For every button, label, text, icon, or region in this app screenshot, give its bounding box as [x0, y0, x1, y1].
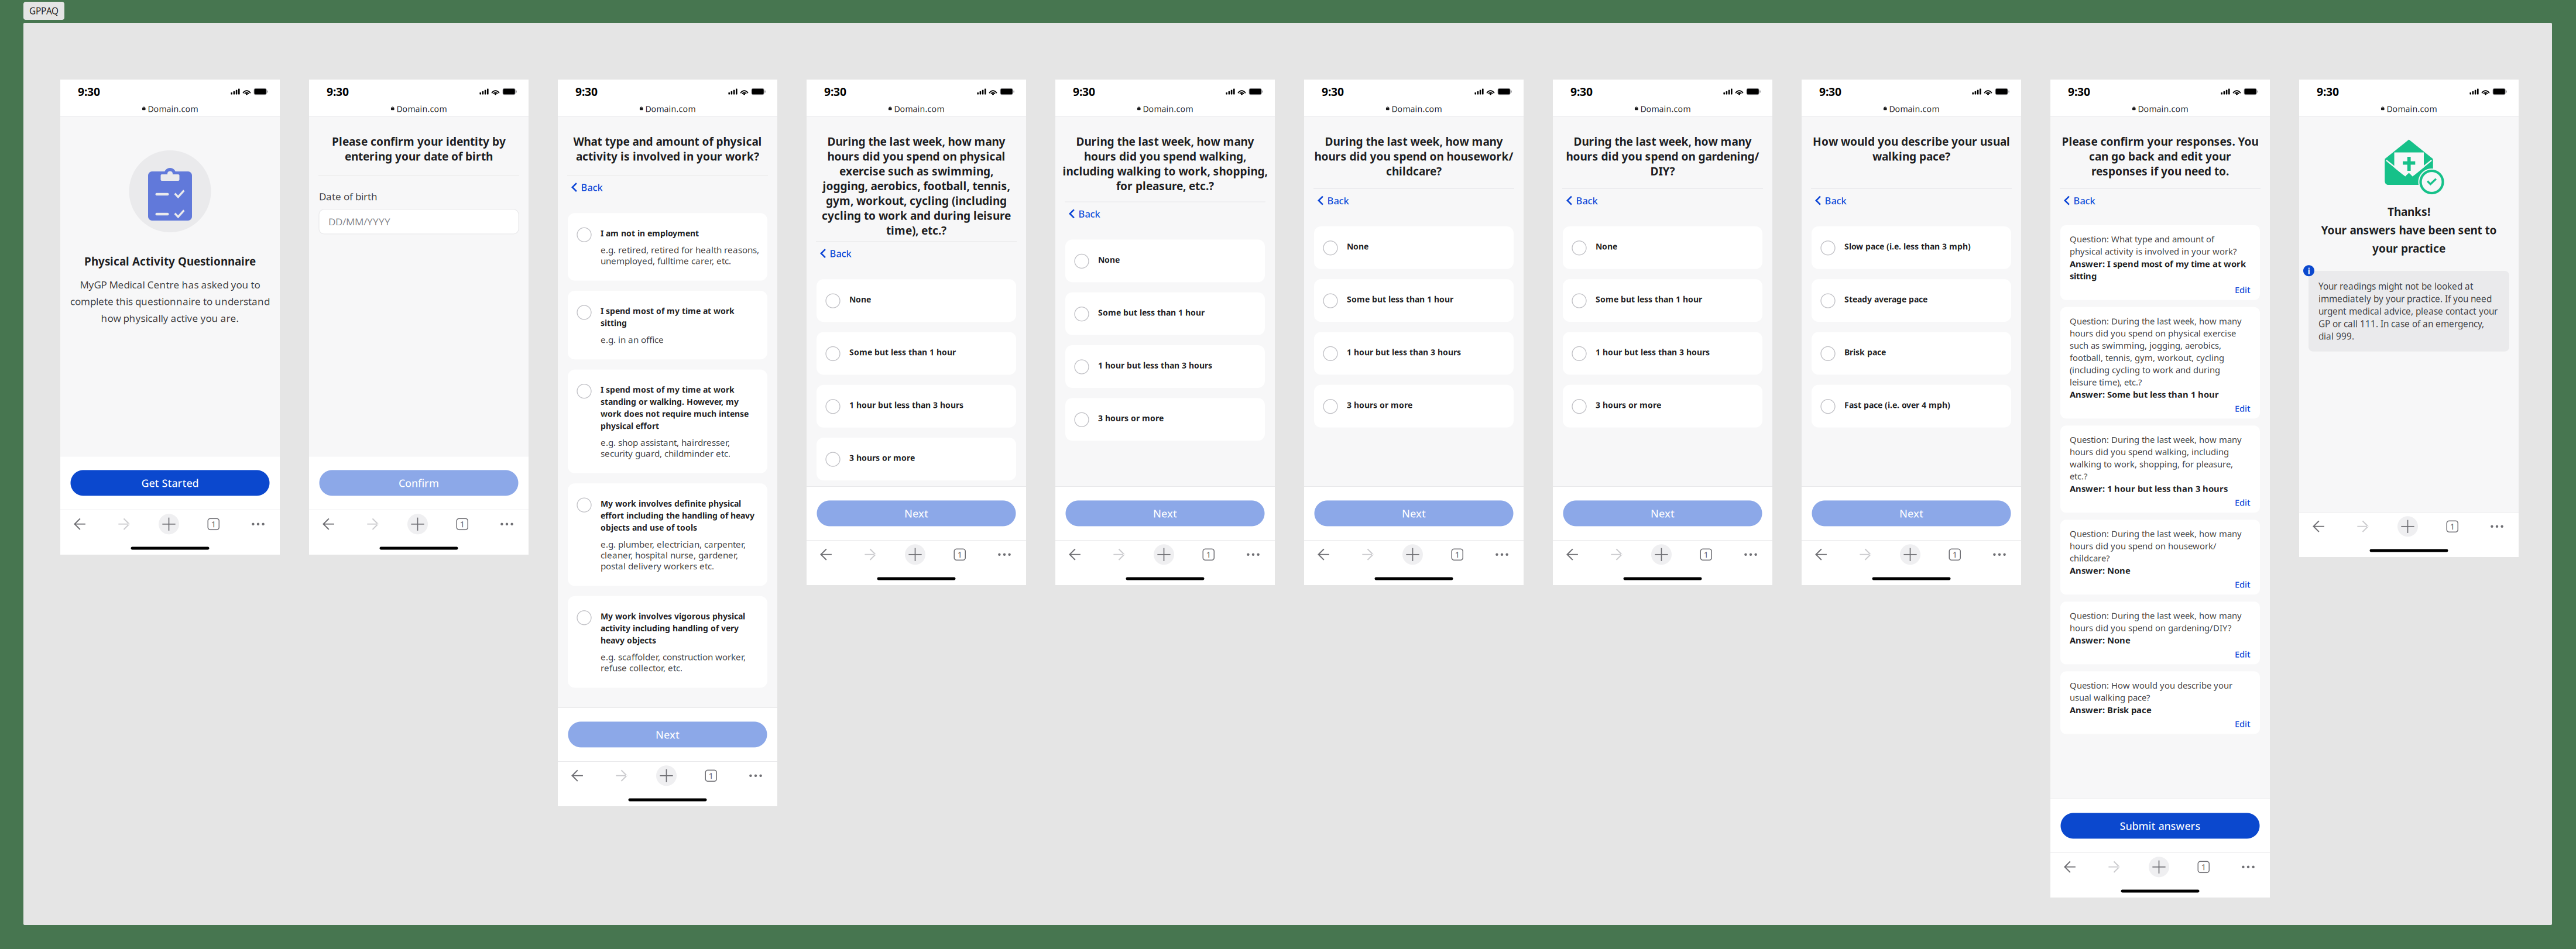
button[interactable]: Tabs	[197, 514, 230, 534]
button[interactable]: Back	[63, 514, 97, 534]
button[interactable]: 3 hours or more	[817, 438, 1016, 480]
button[interactable]: None	[1563, 226, 1762, 269]
button[interactable]: New tab	[1893, 545, 1927, 564]
button[interactable]: Back	[311, 514, 345, 534]
button[interactable]: New tab	[2391, 517, 2425, 536]
button[interactable]: Tabs	[943, 545, 977, 564]
button[interactable]: GPPAQ	[23, 2, 64, 20]
button[interactable]: Forward	[2097, 857, 2131, 877]
button[interactable]: Forward	[356, 514, 390, 534]
button[interactable]: Some but less than 1 hour	[1065, 292, 1265, 335]
button[interactable]: Submit answers	[2061, 813, 2260, 839]
button[interactable]: 1 hour but less than 3 hours	[817, 385, 1016, 428]
button[interactable]: I am not in employment	[568, 213, 767, 281]
button[interactable]: Tabs	[445, 514, 479, 534]
button[interactable]: Back	[1553, 189, 1772, 212]
button[interactable]: Some but less than 1 hour	[1314, 279, 1514, 322]
button[interactable]: 3 hours or more	[1563, 385, 1762, 428]
button[interactable]: 1 hour but less than 3 hours	[1563, 332, 1762, 375]
button[interactable]: More	[1236, 545, 1270, 564]
button[interactable]: Forward	[2346, 517, 2380, 536]
button[interactable]: My work involves definite physical	[568, 483, 767, 586]
button[interactable]: Back	[1055, 202, 1275, 225]
button[interactable]: Edit	[2070, 282, 2251, 297]
button[interactable]: New tab	[649, 766, 683, 786]
button[interactable]: More	[241, 514, 275, 534]
button[interactable]: Forward	[1600, 545, 1634, 564]
button[interactable]: Confirm	[319, 470, 518, 496]
button[interactable]: None	[817, 279, 1016, 322]
button[interactable]: 3 hours or more	[1065, 398, 1265, 441]
button[interactable]: Edit	[2070, 577, 2251, 592]
staticText: childcare?	[2070, 552, 2109, 564]
button[interactable]: Edit	[2070, 716, 2251, 731]
button[interactable]: New tab	[152, 514, 186, 534]
button[interactable]: Edit	[2070, 401, 2251, 416]
button[interactable]: Back	[2301, 517, 2335, 536]
button[interactable]: Back	[560, 766, 594, 786]
button[interactable]: New tab	[2142, 857, 2176, 877]
button[interactable]: Forward	[1102, 545, 1136, 564]
button[interactable]: Slow pace (i.e. less than 3 mph)	[1812, 226, 2011, 269]
button[interactable]: Edit	[2070, 495, 2251, 510]
button[interactable]: Tabs	[1440, 545, 1474, 564]
button[interactable]: Back	[558, 176, 777, 199]
button[interactable]: Fast pace (i.e. over 4 mph)	[1812, 385, 2011, 428]
button[interactable]: Back	[1555, 545, 1589, 564]
button[interactable]: Back	[1304, 189, 1524, 212]
button[interactable]: Tabs	[2435, 517, 2469, 536]
button[interactable]: More	[490, 514, 524, 534]
button[interactable]: Tabs	[1938, 545, 1972, 564]
button[interactable]: 3 hours or more	[1314, 385, 1514, 428]
button[interactable]: More	[1734, 545, 1768, 564]
button[interactable]: Forward	[107, 514, 141, 534]
button[interactable]: Back	[1058, 545, 1092, 564]
button[interactable]: More	[1982, 545, 2016, 564]
button[interactable]: My work involves vigorous physical	[568, 596, 767, 688]
button[interactable]: I spend most of my time at work	[568, 291, 767, 359]
button[interactable]: Tabs	[2187, 857, 2221, 877]
button[interactable]: Get Started	[71, 470, 270, 496]
button[interactable]: New tab	[1147, 545, 1181, 564]
button[interactable]: More	[1485, 545, 1519, 564]
button[interactable]: Forward	[854, 545, 887, 564]
button[interactable]: 1 hour but less than 3 hours	[1314, 332, 1514, 375]
button[interactable]: Next	[817, 500, 1016, 526]
button[interactable]: Back	[807, 242, 1026, 265]
button[interactable]: Next	[568, 722, 767, 747]
button[interactable]: Back	[1306, 545, 1340, 564]
button[interactable]: Next	[1066, 500, 1265, 526]
button[interactable]: Back	[2053, 857, 2087, 877]
button[interactable]: Next	[1314, 500, 1513, 526]
button[interactable]: Next	[1812, 500, 2011, 526]
button[interactable]: Brisk pace	[1812, 332, 2011, 375]
button[interactable]: New tab	[401, 514, 435, 534]
button[interactable]: Tabs	[1689, 545, 1723, 564]
button[interactable]: Back	[2050, 189, 2270, 212]
button[interactable]: New tab	[898, 545, 932, 564]
button[interactable]: Next	[1563, 500, 1762, 526]
button[interactable]: New tab	[1396, 545, 1430, 564]
button[interactable]: Tabs	[1192, 545, 1226, 564]
button[interactable]: Back	[1804, 545, 1838, 564]
button[interactable]: New tab	[1644, 545, 1678, 564]
button[interactable]: 1 hour but less than 3 hours	[1065, 345, 1265, 388]
button[interactable]: Forward	[1351, 545, 1385, 564]
button[interactable]: None	[1314, 226, 1514, 269]
button[interactable]: More	[739, 766, 773, 786]
button[interactable]: Some but less than 1 hour	[817, 332, 1016, 375]
button[interactable]: Tabs	[694, 766, 728, 786]
button[interactable]: Forward	[1849, 545, 1883, 564]
button[interactable]: I spend most of my time at work	[568, 370, 767, 473]
button[interactable]: None	[1065, 240, 1265, 282]
button[interactable]: More	[2231, 857, 2265, 877]
button[interactable]: Some but less than 1 hour	[1563, 279, 1762, 322]
button[interactable]: Forward	[605, 766, 639, 786]
button[interactable]: Edit	[2070, 647, 2251, 661]
button[interactable]: More	[987, 545, 1021, 564]
staticText: etc.?	[2070, 470, 2087, 482]
button[interactable]: Back	[809, 545, 843, 564]
button[interactable]: More	[2480, 517, 2514, 536]
button[interactable]: Back	[1802, 189, 2021, 212]
button[interactable]: Steady average pace	[1812, 279, 2011, 322]
